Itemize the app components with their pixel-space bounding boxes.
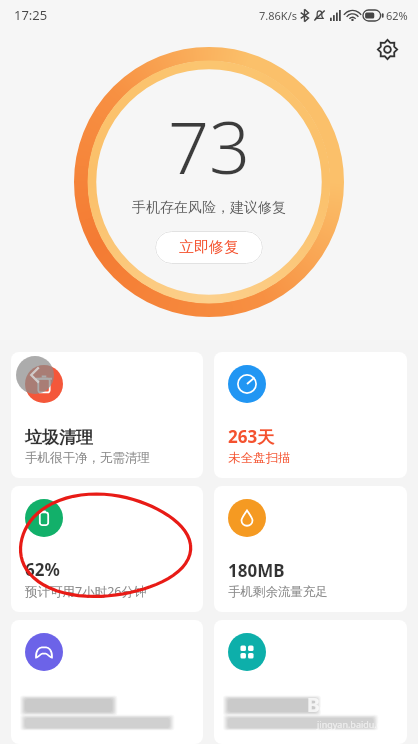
- button[interactable]: 62%: [11, 486, 203, 612]
- staticText: 垃圾清理: [25, 427, 93, 448]
- button[interactable]: 立即修复: [155, 231, 263, 264]
- button[interactable]: 263天: [214, 352, 407, 478]
- staticText: 手机很干净，无需清理: [25, 450, 150, 466]
- button[interactable]: Settings: [370, 32, 404, 66]
- staticText: Baidu 经验: [307, 692, 404, 718]
- button[interactable]: 180MB: [214, 486, 407, 612]
- staticText: 未全盘扫描: [228, 450, 291, 466]
- button[interactable]: [214, 620, 407, 744]
- staticText: 预计可用7小时26分钟: [25, 583, 147, 600]
- staticText: 立即修复: [179, 238, 239, 257]
- staticText: 62%: [25, 558, 60, 581]
- staticText: 手机存在风险，建议修复: [132, 199, 286, 217]
- staticText: jingyan.baidu.com: [317, 718, 395, 730]
- button[interactable]: 垃圾清理: [11, 352, 203, 478]
- staticText: 73: [168, 97, 251, 195]
- staticText: 263天: [228, 425, 275, 448]
- staticText: 手机剩余流量充足: [228, 584, 328, 600]
- button[interactable]: [11, 620, 203, 744]
- staticText: 180MB: [228, 559, 285, 582]
- staticText: 17:25: [14, 6, 48, 24]
- staticText: 62%: [386, 8, 408, 23]
- staticText: 7.86K/s: [259, 8, 297, 23]
